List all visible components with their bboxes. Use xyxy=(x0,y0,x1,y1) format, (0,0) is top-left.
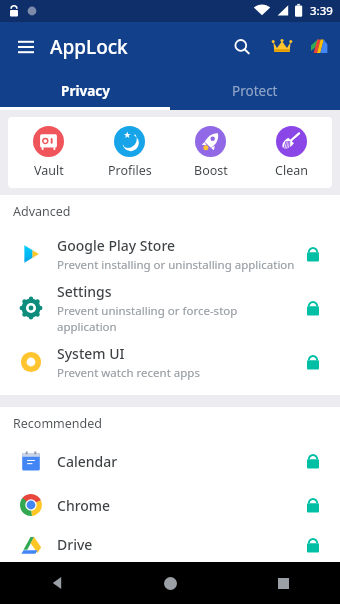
button[interactable]: Search xyxy=(225,30,259,64)
button[interactable]: Lock System UI xyxy=(299,348,327,376)
staticText: Prevent uninstalling or force-stop appli… xyxy=(57,303,299,335)
button[interactable]: Google Play xyxy=(303,31,335,63)
button[interactable]: Protect xyxy=(170,72,340,110)
button[interactable]: Google Play Store xyxy=(0,227,340,281)
staticText: System UI xyxy=(57,344,125,363)
staticText: Prevent watch recent apps xyxy=(57,365,200,381)
button[interactable]: Vault xyxy=(8,117,89,188)
staticText: Google Play Store xyxy=(57,236,176,255)
staticText: Drive xyxy=(57,535,93,554)
button[interactable]: System UI xyxy=(0,335,340,389)
button[interactable]: Lock Settings xyxy=(299,294,327,322)
staticText: Advanced xyxy=(13,203,71,220)
button[interactable]: Clean xyxy=(251,117,332,188)
button[interactable]: Profiles xyxy=(89,117,170,188)
button[interactable]: Upgrade to premium xyxy=(266,31,298,63)
button[interactable]: Drive xyxy=(0,527,340,562)
staticText: Profiles xyxy=(108,162,152,179)
button[interactable]: Lock Drive xyxy=(299,531,327,559)
button[interactable]: Lock Chrome xyxy=(299,491,327,519)
staticText: Settings xyxy=(57,282,112,301)
button[interactable]: Settings xyxy=(0,281,340,335)
button[interactable]: Open navigation menu xyxy=(8,29,44,65)
button[interactable]: Lock Calendar xyxy=(299,447,327,475)
staticText: Protect xyxy=(232,82,278,100)
staticText: Prevent installing or uninstalling appli… xyxy=(57,257,295,273)
staticText: Vault xyxy=(34,162,64,179)
staticText: Recommended xyxy=(13,415,102,432)
button[interactable]: Lock Google Play Store xyxy=(299,240,327,268)
button[interactable]: Back xyxy=(0,562,114,604)
staticText: 3:39 xyxy=(310,3,333,19)
button[interactable]: Home xyxy=(114,562,227,604)
staticText: Calendar xyxy=(57,452,118,471)
button[interactable]: Recent apps xyxy=(227,562,340,604)
button[interactable]: Chrome xyxy=(0,483,340,527)
button[interactable]: Boost xyxy=(170,117,251,188)
staticText: Privacy xyxy=(61,82,110,100)
staticText: Clean xyxy=(275,162,308,179)
staticText: Boost xyxy=(194,162,228,179)
button[interactable]: Calendar xyxy=(0,439,340,483)
staticText: Chrome xyxy=(57,496,111,515)
staticText: AppLock xyxy=(50,34,128,60)
button[interactable]: Privacy xyxy=(0,72,170,110)
